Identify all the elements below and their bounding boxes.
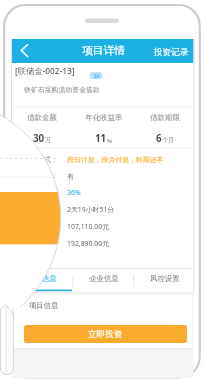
staticText: 项目信息 xyxy=(29,301,59,310)
staticText: 还款方式： xyxy=(20,155,58,166)
staticText: 个月 xyxy=(162,136,175,144)
staticText: 可投金额： xyxy=(20,239,58,250)
staticText: 抵押担保： xyxy=(20,171,58,182)
button[interactable]: 风控设置 xyxy=(135,269,195,292)
staticText: 30 xyxy=(33,132,45,145)
staticText: 年化收益率 xyxy=(72,113,136,124)
staticText: 借款金额 xyxy=(10,113,74,124)
staticText: 借款期限 xyxy=(133,113,197,124)
staticText: 有 xyxy=(67,172,74,181)
staticText: [联储金-002-13] xyxy=(15,65,75,76)
staticText: % xyxy=(107,136,113,144)
button[interactable]: 项目详情 xyxy=(80,43,128,59)
staticText: 3A xyxy=(93,72,100,79)
staticText: 投资记录 xyxy=(154,47,189,58)
staticText: 192,890.00元 xyxy=(67,239,110,248)
staticText: 2天19小时51分 xyxy=(67,205,115,214)
staticText: 36% xyxy=(67,188,81,197)
staticText: 项目进度： xyxy=(20,188,58,199)
staticText: 11 xyxy=(95,132,107,145)
staticText: 107,110.00元 xyxy=(67,222,110,231)
staticText: 立即投资 xyxy=(88,329,123,340)
button[interactable]: Back xyxy=(15,41,33,60)
staticText: 风控设置 xyxy=(150,274,180,283)
staticText: 项目详情 xyxy=(82,44,126,58)
staticText: 按日计息，按月付息，到期还本 xyxy=(67,155,164,164)
staticText: 企业信息 xyxy=(89,274,119,283)
staticText: 项目信息 xyxy=(27,274,57,283)
button[interactable]: 项目信息 xyxy=(12,269,72,292)
button[interactable]: 企业信息 xyxy=(74,269,134,292)
staticText: 万 xyxy=(45,136,52,144)
button[interactable]: 投资记录 xyxy=(152,44,191,60)
staticText: 铁矿石采购流动资金借款 xyxy=(24,85,100,94)
staticText: 6 xyxy=(156,132,162,145)
button[interactable]: 立即投资 xyxy=(24,325,187,343)
